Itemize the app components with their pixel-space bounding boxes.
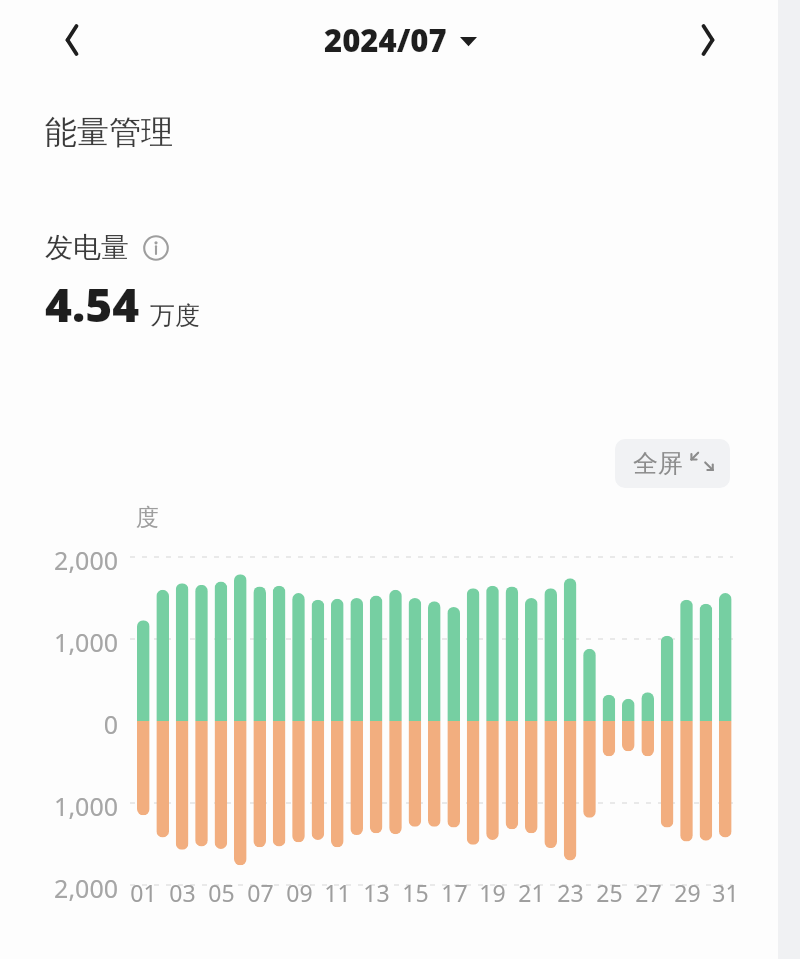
staticText: 4.54 <box>45 273 140 336</box>
button[interactable]: Next month <box>684 16 732 64</box>
staticText: 能量管理 <box>45 112 173 152</box>
staticText: 15 <box>402 877 429 908</box>
staticText: 29 <box>674 877 701 908</box>
staticText: 19 <box>479 877 506 908</box>
staticText: 27 <box>635 877 662 908</box>
staticText: 万度 <box>150 300 200 331</box>
staticText: 13 <box>363 877 390 908</box>
staticText: 0 <box>103 707 118 741</box>
staticText: 31 <box>712 877 739 908</box>
staticText: 25 <box>596 877 623 908</box>
staticText: 01 <box>130 877 157 908</box>
staticText: 23 <box>557 877 584 908</box>
staticText: 03 <box>169 877 196 908</box>
staticText: 1,000 <box>54 625 118 659</box>
button[interactable]: 全屏 <box>615 439 730 488</box>
staticText: 09 <box>286 877 313 908</box>
staticText: 全屏 <box>633 448 683 479</box>
staticText: 发电量 <box>45 230 129 265</box>
staticText: 度 <box>136 503 159 532</box>
staticText: 2024/07 <box>324 19 447 61</box>
staticText: 1,000 <box>54 789 118 823</box>
button[interactable]: 发电量 <box>45 230 169 265</box>
staticText: 2,000 <box>54 871 118 905</box>
staticText: 2,000 <box>54 543 118 577</box>
other: Info <box>143 235 169 261</box>
staticText: 05 <box>208 877 235 908</box>
staticText: 07 <box>247 877 274 908</box>
button[interactable]: 2024/07 <box>324 19 477 61</box>
staticText: 11 <box>324 877 351 908</box>
staticText: 17 <box>441 877 468 908</box>
staticText: 21 <box>518 877 545 908</box>
button[interactable]: Previous month <box>48 16 96 64</box>
